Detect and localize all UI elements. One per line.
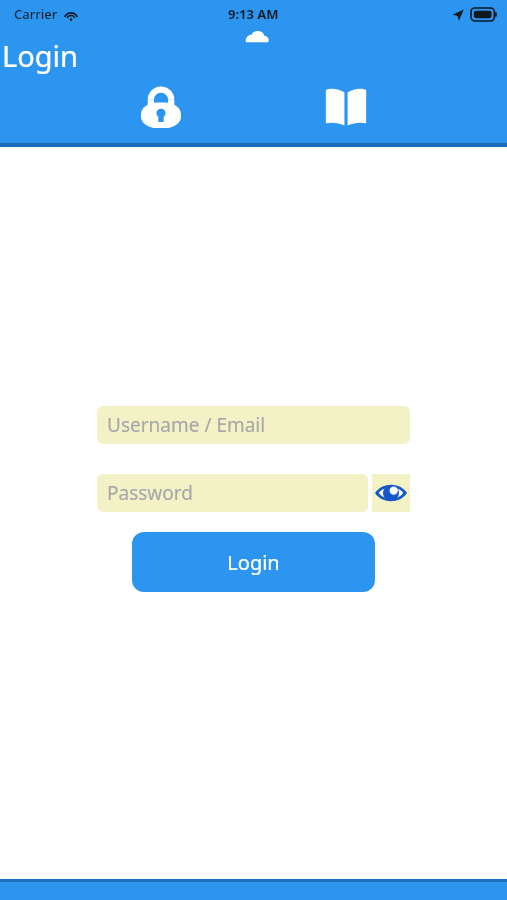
button[interactable]: Username / Email	[97, 406, 410, 444]
button[interactable]: Password	[97, 474, 368, 512]
button[interactable]: Login	[135, 81, 187, 133]
staticText: Carrier	[14, 5, 58, 23]
staticText: Password	[107, 480, 193, 506]
staticText: Login	[2, 36, 78, 75]
staticText: 9:13 AM	[228, 5, 279, 23]
staticText: Login	[227, 549, 280, 576]
button[interactable]: Book	[320, 81, 372, 133]
staticText: Username / Email	[107, 412, 266, 438]
button[interactable]: Login	[132, 532, 375, 592]
button[interactable]: Show password	[372, 474, 410, 512]
